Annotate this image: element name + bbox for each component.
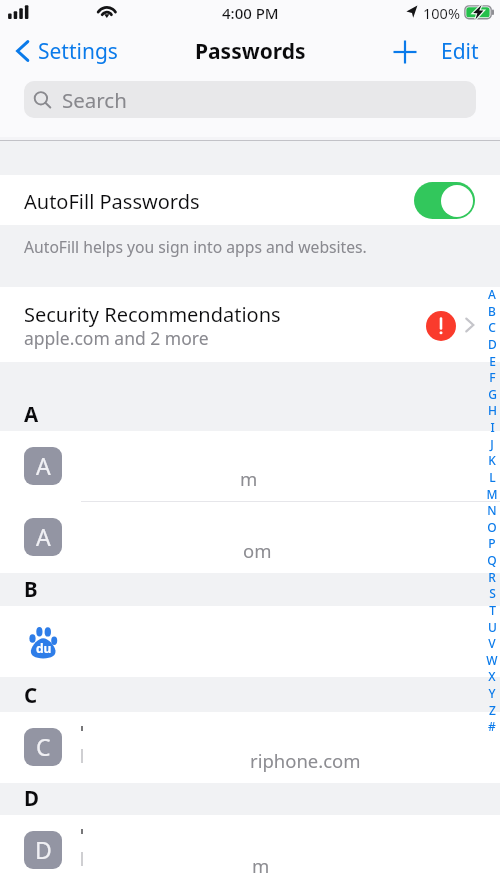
button[interactable]: R xyxy=(485,569,499,585)
button[interactable]: AutoFill Passwords toggle xyxy=(414,182,475,219)
staticText: X xyxy=(488,668,496,684)
button[interactable]: A xyxy=(0,502,500,573)
button[interactable]: A xyxy=(485,286,499,302)
other: Security alert xyxy=(426,311,456,341)
staticText: G xyxy=(488,386,497,402)
button[interactable]: D xyxy=(485,336,499,352)
staticText: Y xyxy=(488,685,496,701)
button[interactable]: W xyxy=(485,652,499,668)
staticText: 4:00 PM xyxy=(222,3,279,23)
button[interactable]: N xyxy=(485,502,499,518)
staticText: riphone.com xyxy=(250,748,361,773)
button[interactable]: O xyxy=(485,519,499,535)
button[interactable]: Q xyxy=(485,552,499,568)
button[interactable]: F xyxy=(485,369,499,385)
other: Alphabet index xyxy=(485,286,499,738)
staticText: H xyxy=(488,402,497,418)
button[interactable]: Security Recommendations xyxy=(0,287,500,362)
button[interactable]: S xyxy=(485,585,499,601)
staticText: A xyxy=(36,450,51,481)
staticText: B xyxy=(24,575,38,603)
button[interactable]: Z xyxy=(485,702,499,718)
staticText: m xyxy=(252,853,270,878)
staticText: W xyxy=(486,652,498,668)
staticText: M xyxy=(486,486,498,502)
staticText: Security Recommendations xyxy=(24,301,281,328)
staticText: K xyxy=(488,452,496,468)
staticText: du xyxy=(36,640,52,656)
staticText: T xyxy=(489,602,496,618)
staticText: S xyxy=(489,585,496,601)
button[interactable]: Y xyxy=(485,685,499,701)
button[interactable]: J xyxy=(485,436,499,452)
button[interactable]: Search xyxy=(24,81,476,118)
button[interactable]: H xyxy=(485,402,499,418)
button[interactable]: T xyxy=(485,602,499,618)
staticText: D xyxy=(35,834,52,865)
staticText: C xyxy=(24,681,38,709)
staticText: Q xyxy=(487,552,497,568)
staticText: Edit xyxy=(441,37,479,66)
staticText: A xyxy=(36,521,51,552)
staticText: AutoFill Passwords xyxy=(24,188,200,215)
staticText: N xyxy=(487,502,497,518)
button[interactable]: L xyxy=(485,469,499,485)
staticText: Passwords xyxy=(195,37,306,66)
button[interactable]: D xyxy=(0,815,500,889)
staticText: apple.com and 2 more xyxy=(24,326,209,350)
button[interactable]: M xyxy=(485,486,499,502)
button[interactable]: Settings xyxy=(0,34,128,68)
button[interactable]: AutoFill Passwords xyxy=(0,175,500,225)
button[interactable]: X xyxy=(485,668,499,684)
button[interactable]: du xyxy=(0,606,500,677)
staticText: U xyxy=(488,619,497,635)
button[interactable]: B xyxy=(485,303,499,319)
staticText: L xyxy=(489,469,496,485)
staticText: Z xyxy=(489,702,496,718)
button[interactable]: Edit xyxy=(432,35,488,68)
staticText: om xyxy=(243,538,272,563)
button[interactable]: P xyxy=(485,535,499,551)
staticText: F xyxy=(489,369,496,385)
staticText: Settings xyxy=(38,37,118,66)
button[interactable]: # xyxy=(485,718,499,734)
staticText: J xyxy=(490,436,494,452)
staticText: 100% xyxy=(423,3,460,23)
button[interactable]: I xyxy=(485,419,499,435)
button[interactable]: Add password xyxy=(388,35,421,68)
button[interactable]: U xyxy=(485,619,499,635)
staticText: # xyxy=(488,718,496,734)
staticText: A xyxy=(24,400,39,428)
staticText: P xyxy=(488,535,496,551)
staticText: A xyxy=(488,286,496,302)
staticText: B xyxy=(488,303,496,319)
button[interactable]: A xyxy=(0,431,500,502)
staticText: D xyxy=(24,784,40,812)
button[interactable]: V xyxy=(485,635,499,651)
button[interactable]: E xyxy=(485,353,499,369)
staticText: D xyxy=(488,336,497,352)
staticText: O xyxy=(487,519,497,535)
button[interactable]: C xyxy=(485,319,499,335)
staticText: R xyxy=(488,569,496,585)
staticText: V xyxy=(488,635,496,651)
button[interactable]: C xyxy=(0,712,500,783)
staticText: C xyxy=(36,731,51,762)
staticText: m xyxy=(240,466,258,491)
button[interactable]: K xyxy=(485,452,499,468)
staticText: I xyxy=(490,419,495,435)
staticText: C xyxy=(488,319,496,335)
staticText: Search xyxy=(62,86,127,114)
staticText: E xyxy=(489,353,496,369)
button[interactable]: G xyxy=(485,386,499,402)
staticText: AutoFill helps you sign into apps and we… xyxy=(24,236,367,257)
